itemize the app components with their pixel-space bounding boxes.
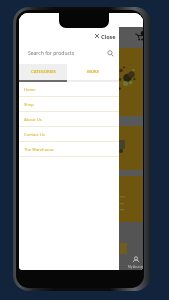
button[interactable]: CATEGORIES [19,64,67,80]
staticText: Shop [24,102,34,108]
button[interactable]: My Account [127,256,143,269]
button[interactable]: Close [19,30,119,42]
staticText: MORE [87,69,100,75]
staticText: The Warehouse [24,147,54,153]
staticText: Search for products [28,50,75,57]
button[interactable]: Search for products [19,42,119,64]
staticText: Contact Us [24,132,45,138]
staticText: CATEGORIES [31,69,56,75]
button[interactable]: The Warehouse [19,142,119,157]
button[interactable]: Shop [19,97,119,112]
button[interactable]: MORE [67,64,119,80]
staticText: My Account [128,265,143,269]
button[interactable]: Contact Us [19,127,119,142]
staticText: Home [24,87,36,93]
staticText: About Us [24,117,42,123]
button[interactable]: About Us [19,112,119,127]
staticText: Close [101,33,116,40]
button[interactable]: Home [19,82,119,97]
button[interactable]: Cart [135,31,143,41]
